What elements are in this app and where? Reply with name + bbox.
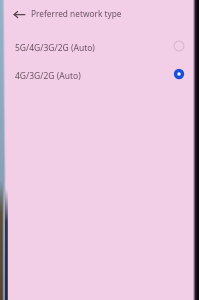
button[interactable]: Back [7, 2, 31, 26]
button[interactable]: 4G/3G/2G (Auto) [0, 61, 199, 89]
staticText: 5G/4G/3G/2G (Auto) [15, 42, 95, 54]
staticText: 4G/3G/2G (Auto) [15, 70, 81, 82]
staticText: Preferred network type [31, 8, 122, 19]
button[interactable]: 5G/4G/3G/2G (Auto) [0, 33, 199, 61]
